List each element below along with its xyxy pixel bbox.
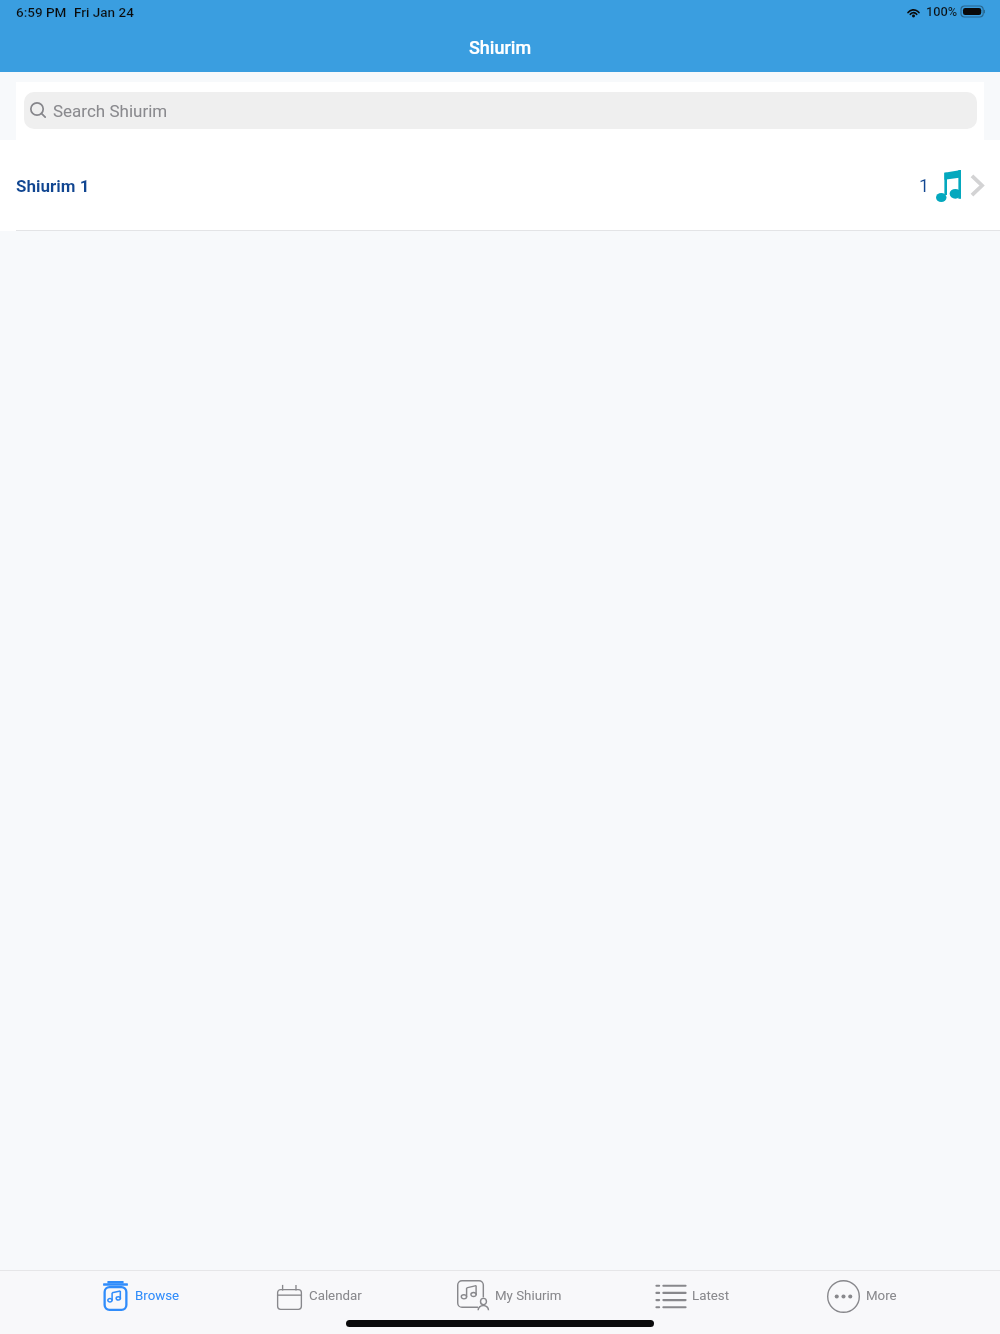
button[interactable]: More <box>817 1275 907 1317</box>
other: Open Shiurim 1 <box>970 174 984 197</box>
button[interactable]: Search Shiurim <box>24 92 977 129</box>
staticText: Shiurim <box>469 37 532 58</box>
staticText: 1 <box>919 175 930 196</box>
staticText: 100% <box>926 4 958 19</box>
staticText: Browse <box>135 1288 180 1304</box>
button[interactable]: My Shiurim <box>446 1275 572 1317</box>
staticText: 6:59 PM <box>16 4 67 20</box>
button[interactable]: Latest <box>645 1275 740 1317</box>
staticText: My Shiurim <box>495 1288 562 1304</box>
staticText: Calendar <box>309 1288 362 1304</box>
button[interactable]: Browse <box>91 1275 190 1317</box>
staticText: Shiurim 1 <box>16 176 90 196</box>
staticText: Latest <box>692 1288 730 1304</box>
staticText: Search Shiurim <box>53 101 168 121</box>
button[interactable]: Calendar <box>265 1275 372 1317</box>
staticText: Fri Jan 24 <box>74 4 134 20</box>
staticText: More <box>866 1288 897 1304</box>
button[interactable]: Shiurim 1 <box>0 140 1000 231</box>
